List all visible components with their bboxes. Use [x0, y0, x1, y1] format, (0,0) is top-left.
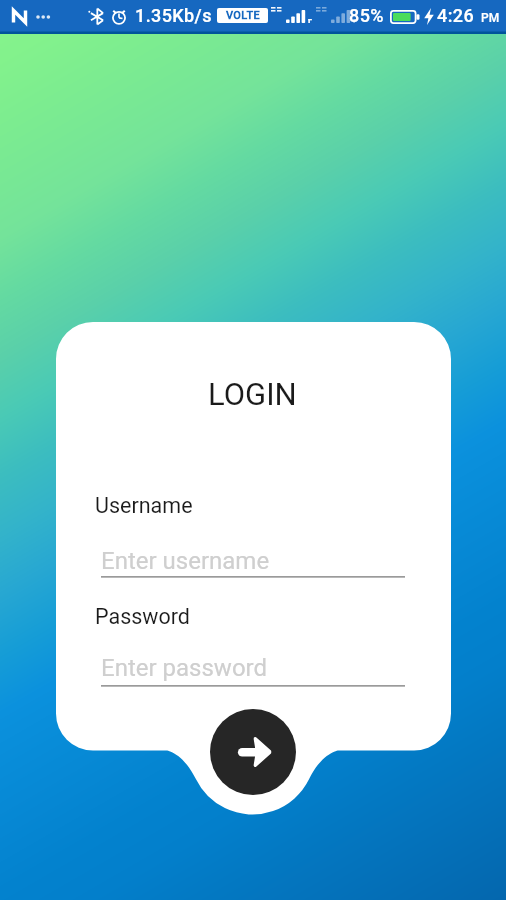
staticText: 85% — [349, 5, 384, 26]
staticText: Enter username — [101, 547, 270, 575]
staticText: Password — [95, 604, 190, 629]
staticText: LOGIN — [208, 376, 297, 412]
staticText: 4:26 — [437, 5, 475, 26]
staticText: VOLTE — [226, 9, 260, 22]
staticText: PM — [481, 11, 500, 25]
staticText: Enter password — [101, 654, 268, 682]
button[interactable]: Enter password — [101, 648, 405, 685]
button[interactable]: Enter username — [101, 541, 405, 578]
staticText: Username — [95, 493, 193, 518]
staticText: 1.35Kb/s — [135, 5, 212, 26]
button[interactable]: Sign in — [210, 709, 296, 795]
